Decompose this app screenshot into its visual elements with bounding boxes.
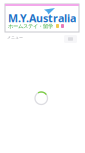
staticText: メニュー: [7, 35, 23, 40]
staticText: ホームステイ・留学: [8, 23, 53, 30]
staticText: M.Y.Australia: [8, 11, 76, 25]
button[interactable]: Menu: [64, 35, 77, 43]
